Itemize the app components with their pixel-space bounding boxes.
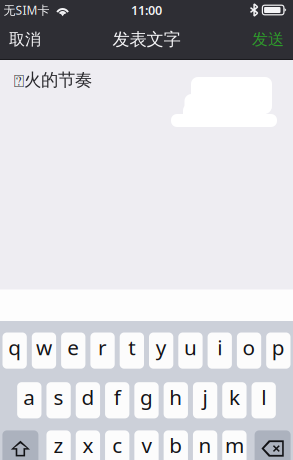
staticText: f (114, 383, 121, 411)
button[interactable]: 发送 (243, 20, 293, 59)
staticText: i (217, 333, 222, 361)
staticText: e (67, 333, 79, 361)
button[interactable]: u (178, 332, 203, 369)
staticText: ⍰火的节奏 (14, 69, 92, 91)
staticText: r (98, 333, 107, 361)
staticText: p (272, 333, 285, 361)
button[interactable]: l (252, 382, 276, 418)
button[interactable]: r (90, 332, 115, 369)
staticText: h (169, 383, 182, 411)
staticText: b (169, 431, 182, 459)
staticText: a (23, 383, 35, 411)
staticText: n (199, 431, 212, 459)
staticText: j (203, 383, 208, 411)
button[interactable]: a (17, 382, 41, 418)
staticText: u (184, 333, 197, 361)
button[interactable]: m (222, 430, 246, 460)
button[interactable]: d (76, 382, 100, 418)
staticText: 发表文字 (112, 29, 180, 50)
button[interactable]: s (46, 382, 71, 418)
button[interactable]: g (134, 382, 159, 418)
button[interactable]: o (237, 332, 261, 369)
staticText: w (36, 333, 52, 361)
staticText: g (140, 383, 153, 411)
button[interactable]: j (193, 382, 217, 418)
button[interactable]: i (208, 332, 232, 369)
button[interactable]: q (2, 332, 27, 369)
staticText: z (54, 431, 64, 459)
button[interactable]: n (193, 430, 217, 460)
staticText: 发送 (252, 30, 284, 49)
staticText: s (54, 383, 64, 411)
button[interactable]: t (120, 332, 144, 369)
staticText: d (81, 383, 94, 411)
staticText: v (141, 431, 151, 459)
button[interactable]: y (149, 332, 173, 369)
button[interactable]: h (164, 382, 188, 418)
staticText: k (229, 383, 240, 411)
staticText: 无SIM卡 (3, 2, 49, 18)
button[interactable]: v (134, 430, 159, 460)
staticText: l (261, 383, 266, 411)
button[interactable]: e (61, 332, 85, 369)
button[interactable]: k (222, 382, 246, 418)
staticText: 11:00 (131, 1, 162, 19)
staticText: c (112, 431, 122, 459)
button[interactable]: 取消 (0, 20, 50, 59)
staticText: m (225, 431, 244, 459)
button[interactable]: b (164, 430, 188, 460)
button[interactable]: x (76, 430, 100, 460)
button[interactable]: z (46, 430, 71, 460)
button[interactable]: f (105, 382, 129, 418)
staticText: y (156, 333, 167, 361)
staticText: x (82, 431, 93, 459)
staticText: o (243, 333, 256, 361)
button[interactable]: w (32, 332, 56, 369)
button[interactable]: p (266, 332, 290, 369)
staticText: t (128, 333, 135, 361)
staticText: 取消 (9, 30, 41, 49)
staticText: q (8, 333, 21, 361)
button[interactable]: c (105, 430, 129, 460)
button[interactable]: Delete (255, 430, 291, 460)
button[interactable]: Shift (2, 430, 38, 460)
